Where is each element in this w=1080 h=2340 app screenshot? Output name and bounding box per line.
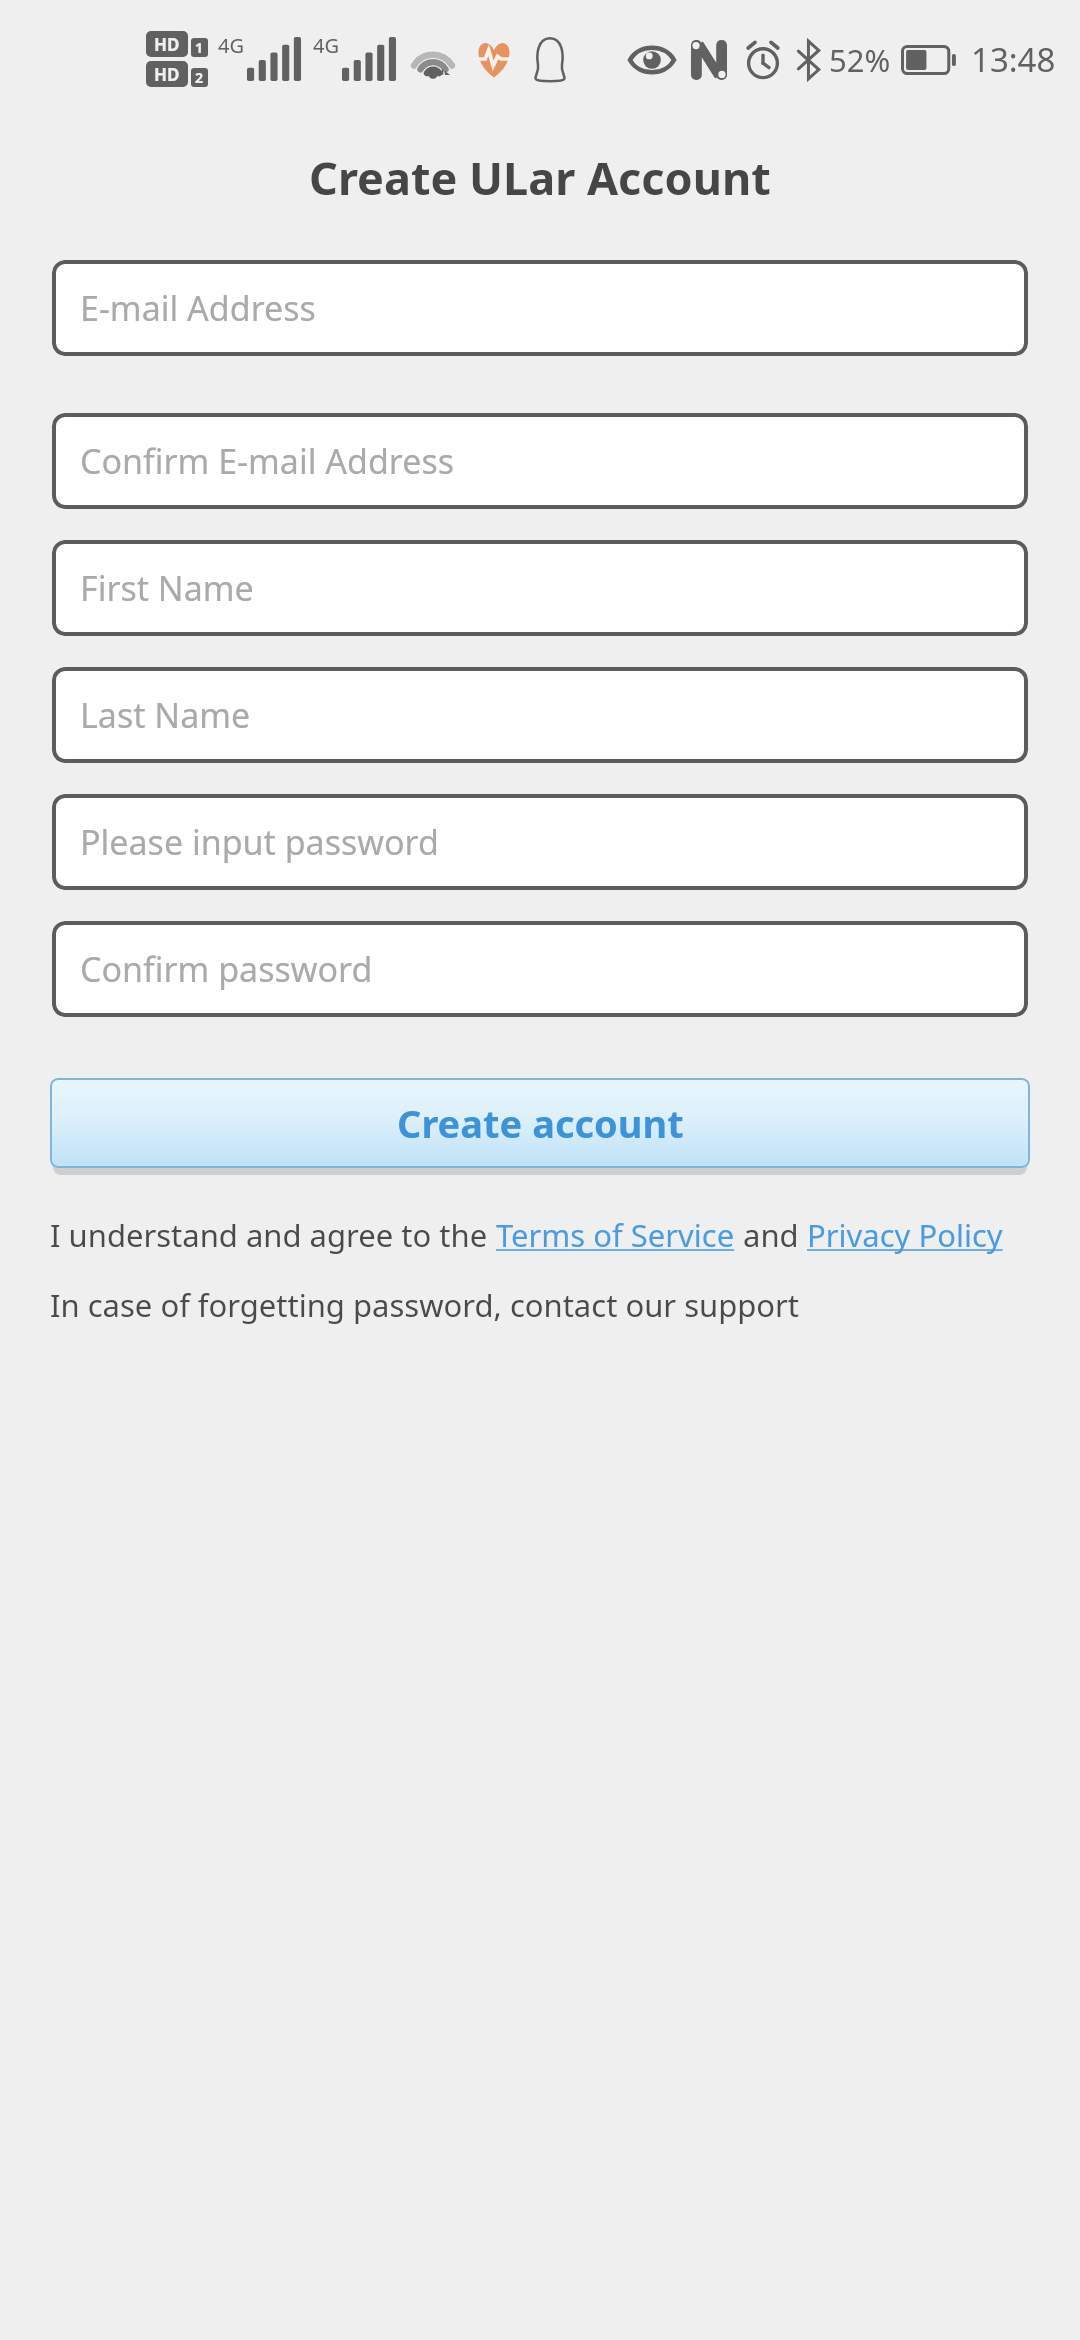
button[interactable]: Terms of Service <box>496 1214 735 1256</box>
staticText: HD <box>154 63 180 86</box>
staticText: 4G <box>218 32 244 59</box>
other: Bluetooth <box>795 40 823 80</box>
other: Eye comfort mode <box>629 43 675 77</box>
staticText: 2 <box>195 68 204 87</box>
button[interactable]: First Name <box>52 540 1028 636</box>
staticText: Create ULar Account <box>309 147 771 208</box>
button[interactable]: In case of forgetting password, contact … <box>50 1284 1080 1326</box>
button[interactable]: E-mail Address <box>52 260 1028 356</box>
staticText: Please input password <box>80 819 439 865</box>
staticText: and <box>735 1214 807 1256</box>
staticText: In case of forgetting password, contact … <box>50 1284 800 1326</box>
staticText: Confirm password <box>80 946 373 992</box>
staticText: Confirm E-mail Address <box>80 438 454 484</box>
button[interactable]: Create account <box>50 1078 1030 1168</box>
button[interactable]: Confirm password <box>52 921 1028 1017</box>
button[interactable]: Privacy Policy <box>807 1214 1003 1256</box>
staticText: Last Name <box>80 692 251 738</box>
other: Battery 52 percent <box>901 45 957 75</box>
staticText: Terms of Service <box>496 1214 735 1256</box>
button[interactable]: Confirm E-mail Address <box>52 413 1028 509</box>
staticText: First Name <box>80 565 254 611</box>
staticText: 4G <box>313 32 339 59</box>
other: Alarm <box>743 40 783 80</box>
button[interactable]: Last Name <box>52 667 1028 763</box>
other: NFC <box>691 40 727 80</box>
staticText: HD <box>154 33 180 56</box>
staticText: 1 <box>195 38 204 57</box>
staticText: I understand and agree to the <box>50 1214 496 1256</box>
button[interactable]: Please input password <box>52 794 1028 890</box>
staticText: 13:48 <box>971 37 1056 82</box>
staticText: E-mail Address <box>80 285 316 331</box>
staticText: Privacy Policy <box>807 1214 1003 1256</box>
staticText: Create account <box>397 1097 684 1149</box>
staticText: 52% <box>829 39 891 81</box>
